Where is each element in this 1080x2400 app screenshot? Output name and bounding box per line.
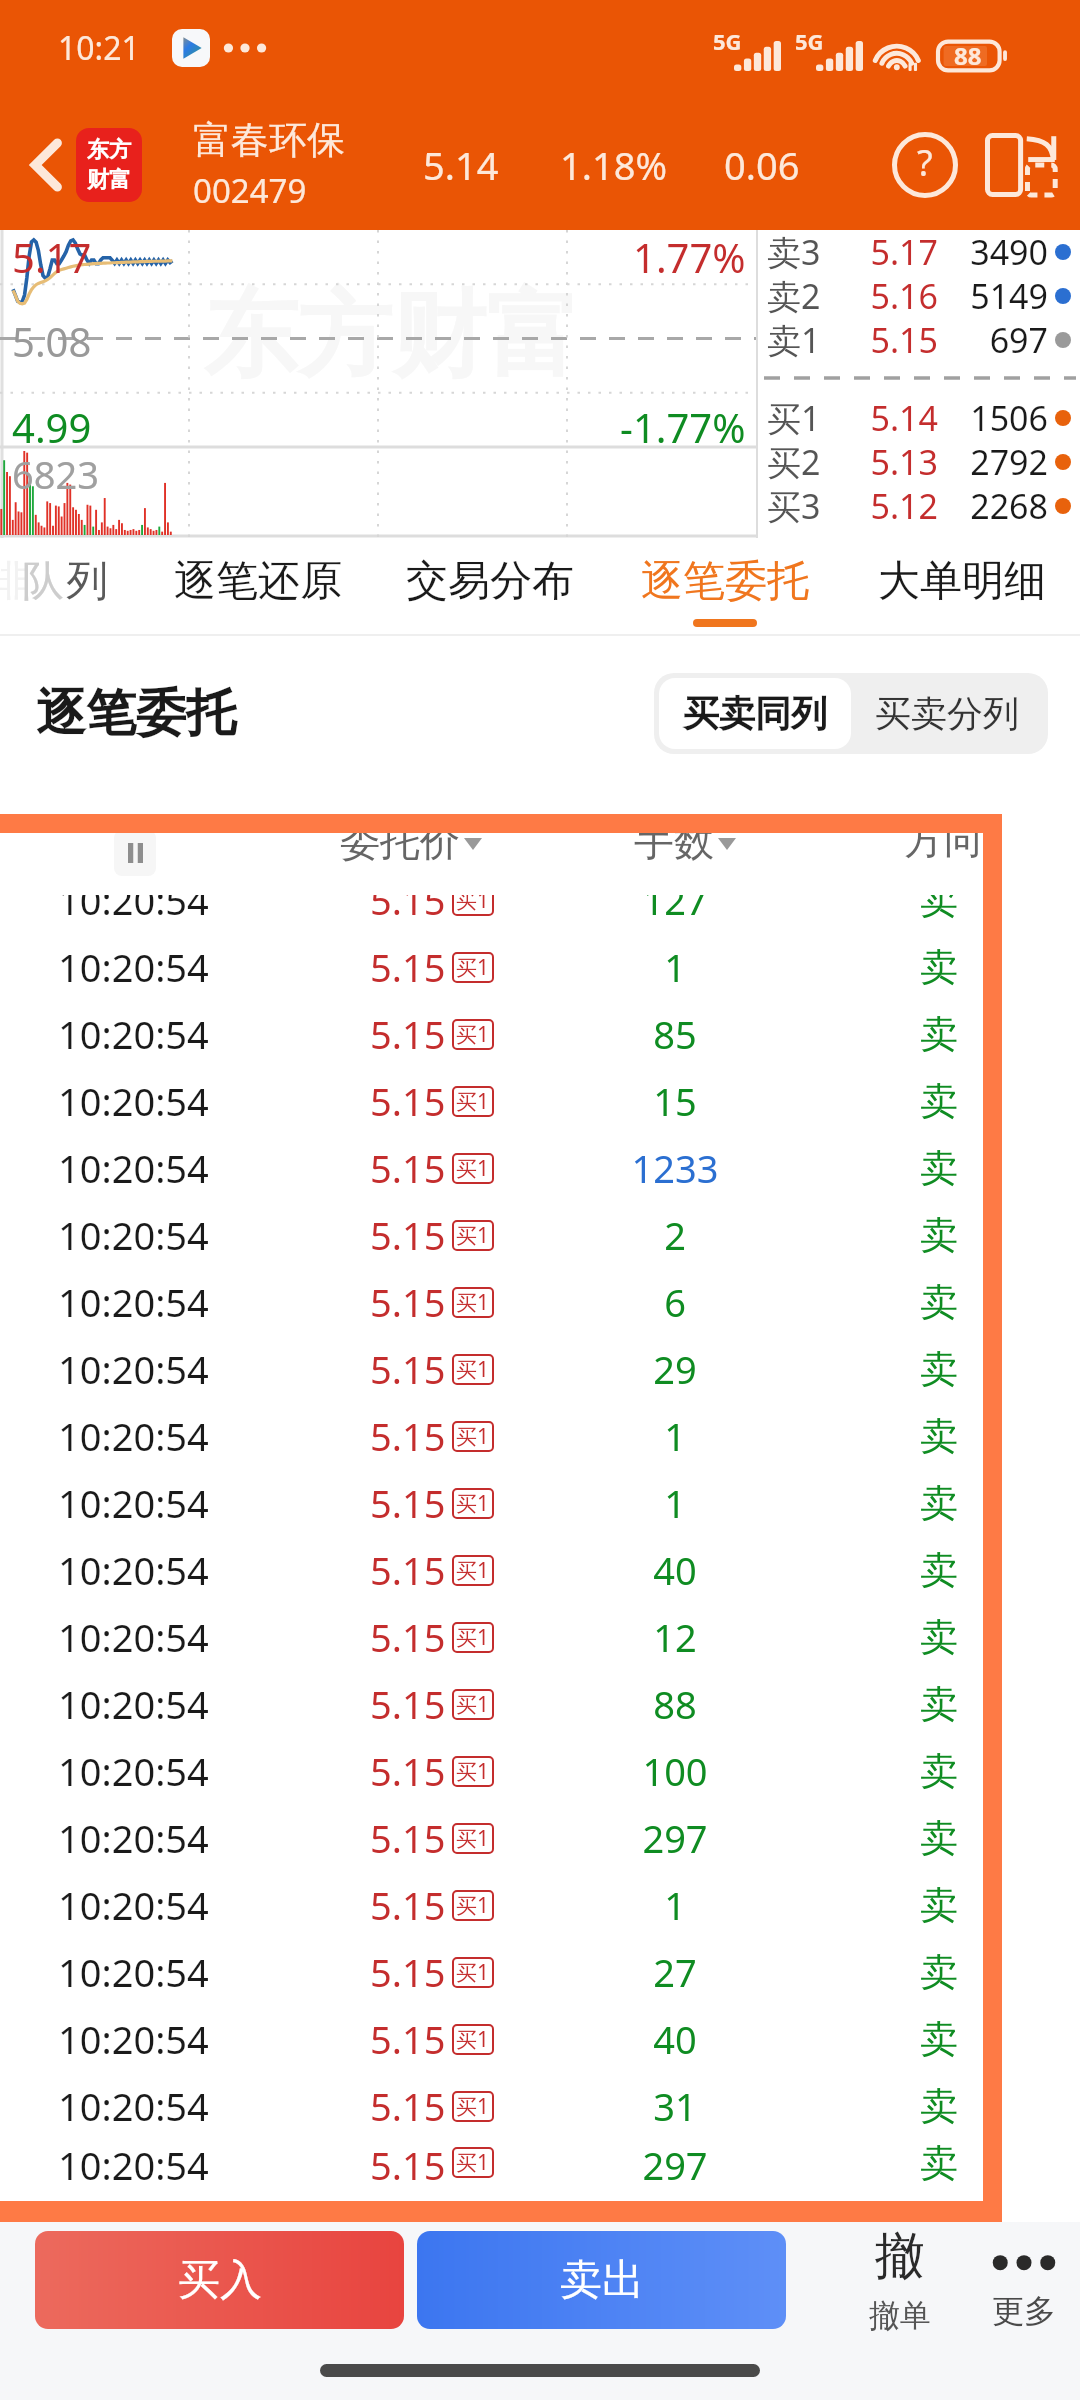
staticText: 10:20:54 — [58, 2139, 209, 2186]
staticText: 买1 — [456, 1087, 490, 1116]
staticText: 买1 — [456, 1221, 490, 1250]
staticText: 买1 — [456, 1355, 490, 1384]
staticText: 卖出 — [560, 2254, 644, 2307]
staticText: 卖1 — [767, 317, 821, 361]
staticText: 5.15 — [370, 1276, 446, 1328]
staticText: 5.17 — [758, 229, 938, 273]
staticText: 5.15 — [370, 1812, 446, 1864]
staticText: 5.15 — [370, 1946, 446, 1998]
button[interactable]: 买2 — [758, 440, 1080, 484]
button[interactable]: 买3 — [758, 484, 1080, 528]
button[interactable]: 10:20:54 — [0, 1737, 1002, 1804]
staticText: 卖 — [920, 1479, 958, 1527]
staticText: 10:20:54 — [58, 1410, 209, 1462]
staticText: 10:20:54 — [58, 1745, 209, 1797]
staticText: 5.17 — [12, 230, 92, 284]
staticText: 40 — [565, 2013, 785, 2065]
staticText: 买1 — [456, 2025, 490, 2054]
button[interactable]: 卖出 — [417, 2231, 786, 2329]
button[interactable]: 10:20:54 — [0, 1201, 1002, 1268]
staticText: 127 — [565, 895, 785, 926]
button[interactable]: 10:20:54 — [0, 1067, 1002, 1134]
button[interactable]: 10:20:54 — [0, 1469, 1002, 1536]
button[interactable]: Help — [882, 122, 968, 208]
staticText: 1233 — [565, 1142, 785, 1194]
button[interactable]: 10:20:54 — [0, 895, 1002, 933]
button[interactable]: Pause — [114, 830, 156, 876]
button[interactable]: 10:20:54 — [0, 933, 1002, 1000]
button[interactable]: 10:20:54 — [0, 1938, 1002, 2005]
staticText: 卖 — [920, 2082, 958, 2130]
button[interactable]: 10:20:54 — [0, 1804, 1002, 1871]
staticText: 逐笔委托 — [36, 682, 236, 745]
button[interactable]: 10:20:54 — [0, 1603, 1002, 1670]
button[interactable]: 10:20:54 — [0, 1670, 1002, 1737]
button[interactable]: 10:20:54 — [0, 2072, 1002, 2139]
staticText: 10:20:54 — [58, 895, 209, 926]
staticText: 5.15 — [370, 1879, 446, 1931]
staticText: -1.77% — [620, 400, 746, 454]
staticText: 10:20:54 — [58, 1611, 209, 1663]
button[interactable]: 10:20:54 — [0, 2005, 1002, 2072]
staticText: 5.15 — [370, 2139, 446, 2186]
button[interactable]: Back — [0, 100, 92, 230]
staticText: 297 — [565, 1812, 785, 1864]
staticText: 5.15 — [370, 1008, 446, 1060]
staticText: 卖 — [920, 943, 958, 991]
button[interactable]: 排 — [0, 538, 175, 636]
button[interactable]: 撤 — [844, 2225, 956, 2335]
button[interactable]: 卖1 — [758, 318, 1080, 362]
button[interactable]: 10:20:54 — [0, 1536, 1002, 1603]
staticText: 29 — [565, 1343, 785, 1395]
staticText: 买1 — [456, 1020, 490, 1049]
staticText: 5.15 — [370, 895, 446, 926]
button[interactable]: 买1 — [758, 396, 1080, 440]
staticText: 买1 — [456, 1556, 490, 1585]
button[interactable]: 交易分布 — [375, 538, 605, 636]
button[interactable]: 委托价 — [340, 816, 482, 866]
staticText: 5.14 — [423, 139, 499, 191]
staticText: 2792 — [758, 439, 1048, 483]
button[interactable]: 手数 — [634, 816, 736, 866]
button[interactable]: 买入 — [35, 2231, 404, 2329]
button[interactable]: 大单明细 — [847, 538, 1077, 636]
staticText: 15 — [565, 1075, 785, 1127]
button[interactable]: 卖3 — [758, 230, 1080, 274]
staticText: 卖 — [920, 1881, 958, 1929]
staticText: 买1 — [456, 1824, 490, 1853]
button[interactable]: 更多 — [968, 2229, 1080, 2331]
button[interactable]: 10:20:54 — [0, 1268, 1002, 1335]
staticText: 卖 — [920, 1948, 958, 1996]
button[interactable]: 10:20:54 — [0, 1402, 1002, 1469]
button[interactable]: 买卖分列 — [875, 691, 1019, 736]
button[interactable]: 10:20:54 — [0, 1871, 1002, 1938]
staticText: 1 — [565, 1410, 785, 1462]
button[interactable]: 10:20:54 — [0, 1335, 1002, 1402]
button[interactable]: 10:20:54 — [0, 1134, 1002, 1201]
staticText: 3490 — [758, 229, 1048, 273]
button[interactable]: 10:20:54 — [0, 1000, 1002, 1067]
staticText: 5.15 — [370, 1142, 446, 1194]
staticText: 买1 — [456, 1623, 490, 1652]
staticText: 88 — [954, 39, 982, 72]
staticText: 5.15 — [370, 1745, 446, 1797]
staticText: 队 — [22, 555, 64, 608]
staticText: 10:20:54 — [58, 1075, 209, 1127]
staticText: 买1 — [456, 1422, 490, 1451]
staticText: 列 — [66, 555, 108, 608]
button[interactable]: 逐笔委托 — [610, 538, 840, 636]
staticText: 卖 — [920, 1211, 958, 1259]
button[interactable]: 卖2 — [758, 274, 1080, 318]
staticText: 5.15 — [370, 1209, 446, 1261]
staticText: 5.12 — [758, 483, 938, 527]
button[interactable]: 买卖同列 — [683, 691, 827, 736]
button[interactable]: Multi window — [979, 123, 1063, 207]
button[interactable]: 10:20:54 — [0, 2139, 1002, 2186]
staticText: 卖 — [920, 1814, 958, 1862]
staticText: 交易分布 — [406, 555, 574, 608]
staticText: 5.15 — [370, 2013, 446, 2065]
staticText: 买2 — [767, 439, 821, 483]
button[interactable]: East Money — [76, 128, 142, 202]
button[interactable]: 逐笔还原 — [143, 538, 373, 636]
staticText: 卖 — [920, 2015, 958, 2063]
